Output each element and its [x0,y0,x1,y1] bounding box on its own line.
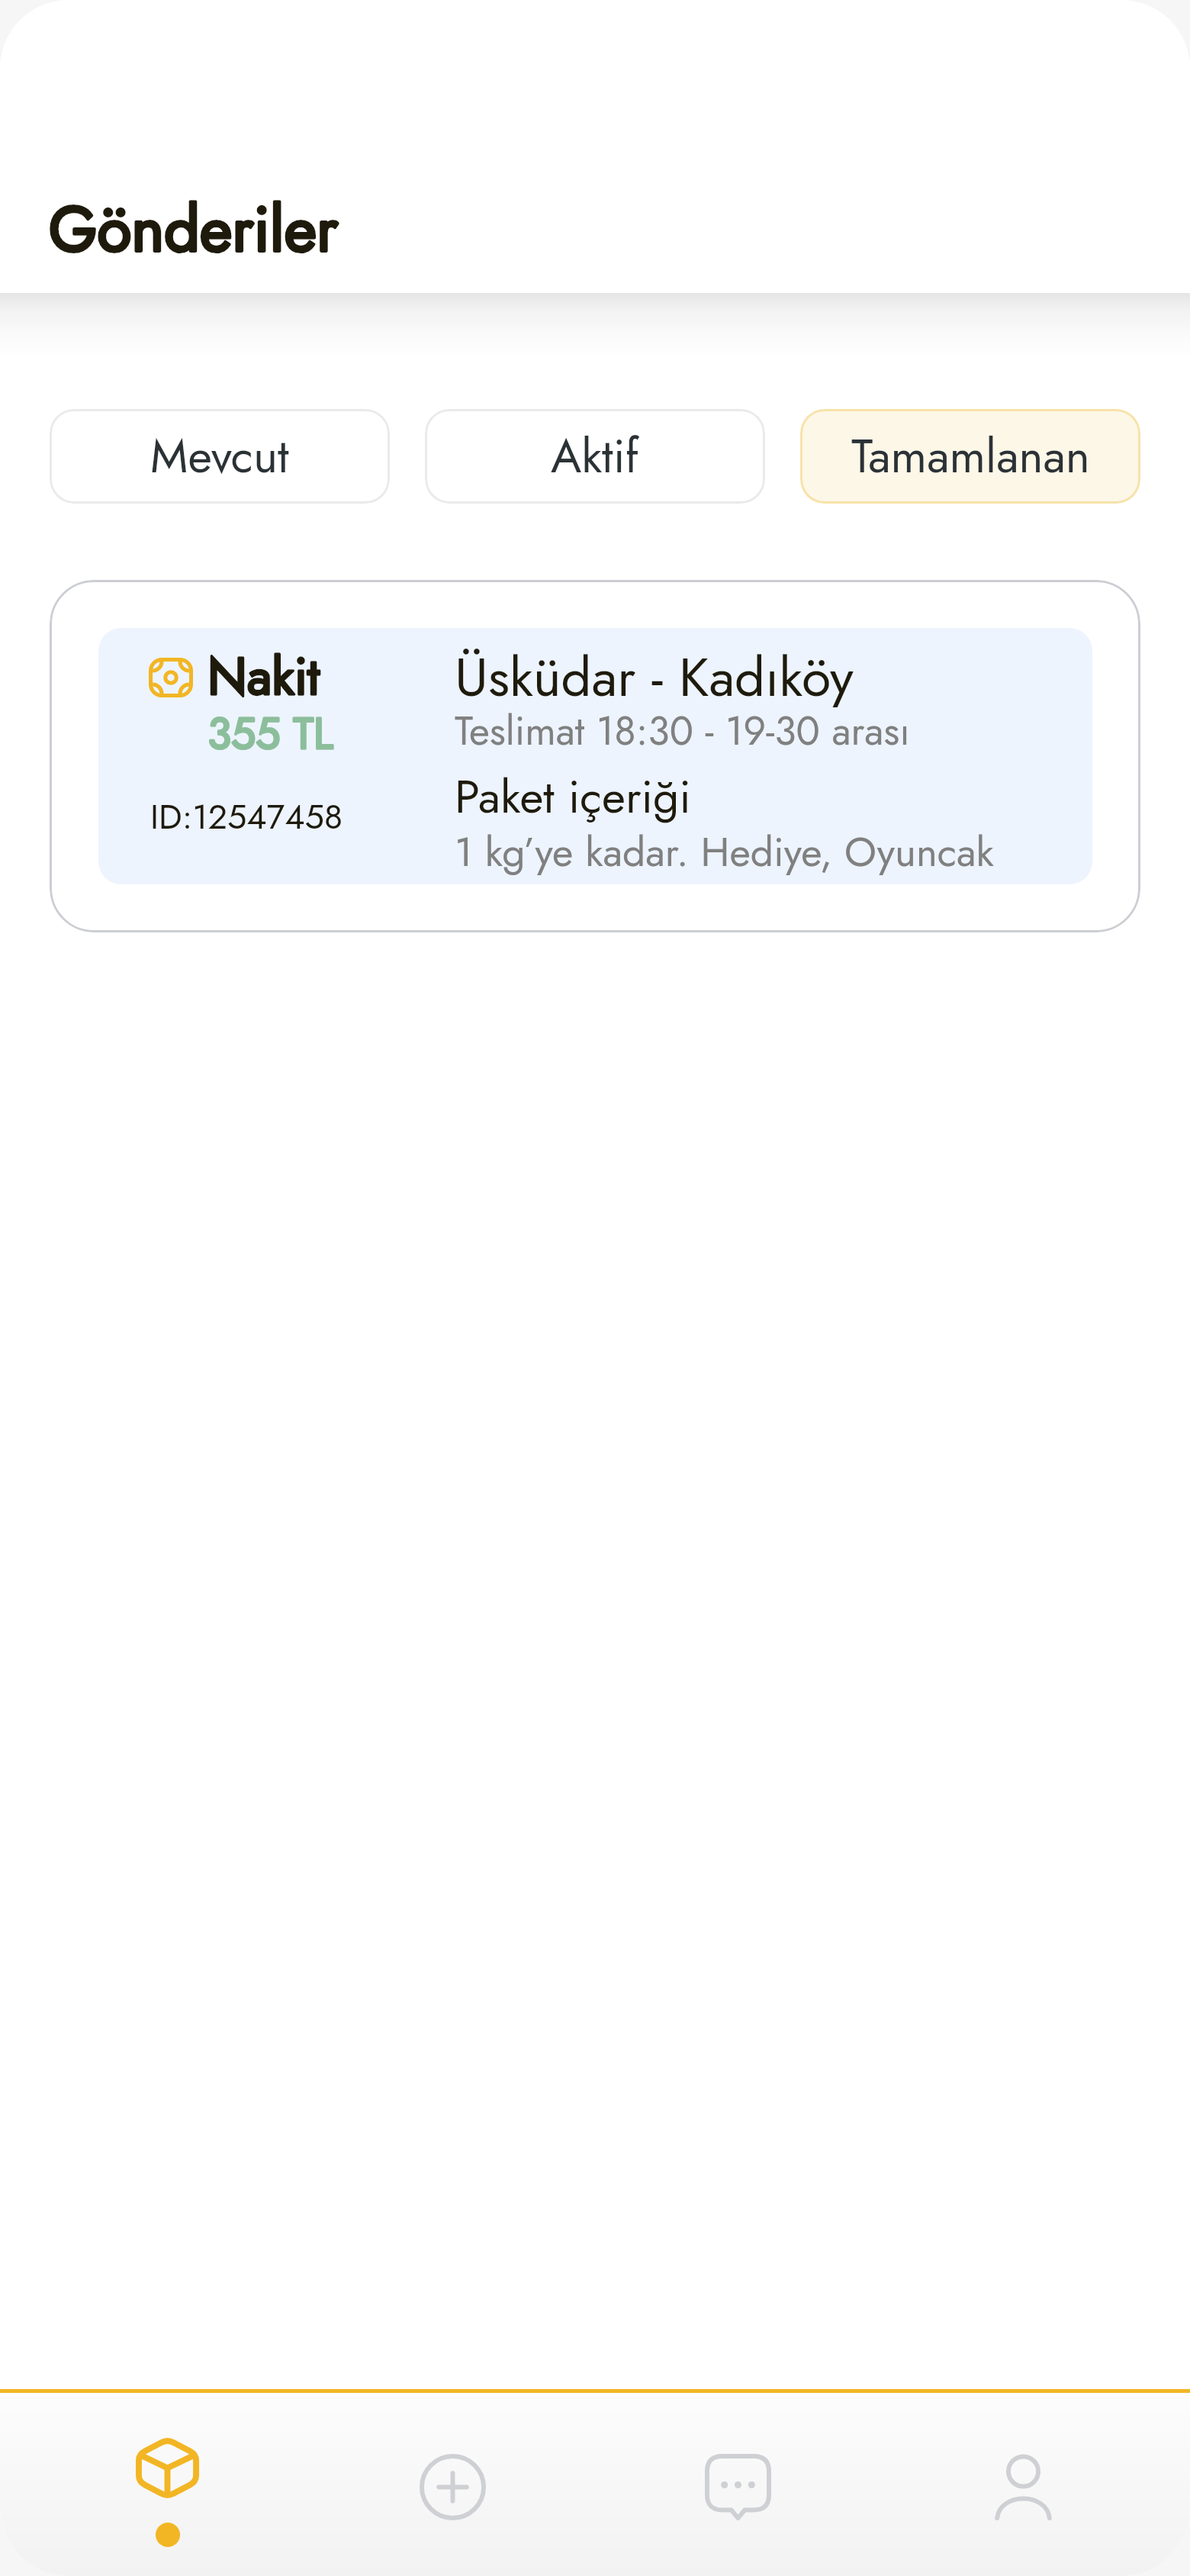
staticText: Nakit [207,639,320,713]
staticText: Üsküdar - Kadıköy [455,639,854,716]
button[interactable]: Nakit [50,580,1140,932]
staticText: Nakit [207,639,320,713]
staticText: Tamamlanan [851,423,1090,490]
button[interactable]: Mevcut [50,409,390,504]
staticText: Mevcut [150,423,289,490]
staticText: Paket içeriği [455,764,691,830]
button[interactable]: Shipments [24,2389,310,2576]
button[interactable]: Messages [595,2389,880,2576]
staticText: ID:12547458 [150,792,343,842]
staticText: Gönderiler [49,184,339,274]
staticText: 355 TL [207,702,333,765]
staticText: Teslimat 18:30 - 19-30 arası [455,702,910,759]
button[interactable]: Aktif [425,409,765,504]
button[interactable]: Tamamlanan [800,409,1140,504]
staticText: Gönderiler [49,184,339,274]
button[interactable]: Profile [880,2389,1166,2576]
staticText: 1 kg’ye kadar. Hediye, Oyuncak [455,823,994,881]
staticText: Aktif [551,423,639,490]
button[interactable]: New shipment [310,2389,595,2576]
staticText: 355 TL [207,702,333,765]
